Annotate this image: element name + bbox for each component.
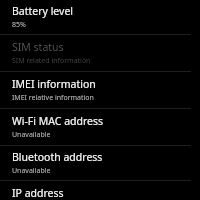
button[interactable]: SIM status — [0, 35, 200, 71]
staticText: IP address — [12, 186, 64, 200]
staticText: IMEI information — [12, 77, 96, 91]
staticText: Battery level — [12, 4, 74, 18]
button[interactable]: IMEI information — [0, 72, 200, 108]
staticText: IMEI relative information — [12, 93, 94, 103]
staticText: 85% — [12, 20, 26, 30]
button[interactable]: Bluetooth address — [0, 146, 200, 180]
staticText: Unavailable — [12, 130, 51, 140]
staticText: Bluetooth address — [12, 150, 103, 164]
button[interactable]: Wi-Fi MAC address — [0, 109, 200, 145]
staticText: SIM related information — [12, 56, 91, 66]
button[interactable]: IP address — [0, 181, 200, 200]
staticText: Unavailable — [12, 166, 51, 176]
staticText: Wi-Fi MAC address — [12, 114, 104, 128]
button[interactable]: Battery level — [0, 0, 200, 34]
staticText: SIM status — [12, 40, 64, 54]
